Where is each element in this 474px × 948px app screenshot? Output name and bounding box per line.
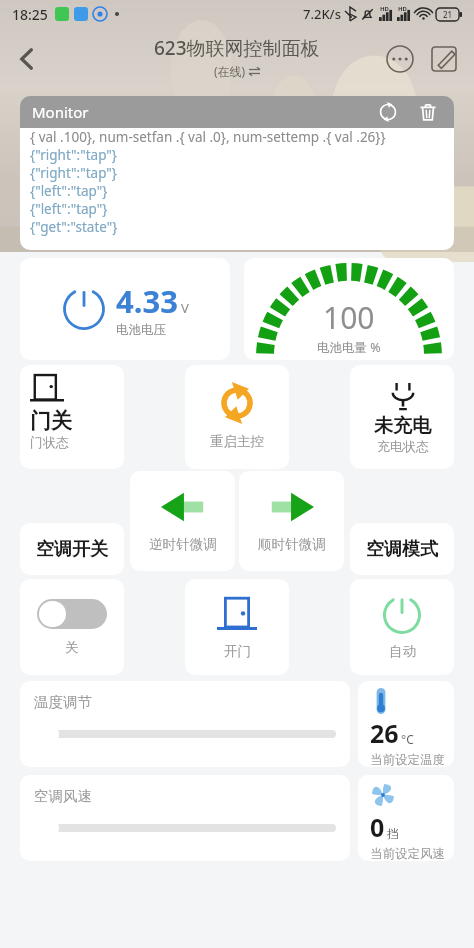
staticText: V	[181, 299, 189, 317]
button[interactable]: 逆时针微调	[130, 471, 235, 571]
button[interactable]: Back	[4, 36, 50, 82]
button[interactable]: 空调模式	[350, 523, 454, 575]
button[interactable]: 未充电	[350, 365, 454, 469]
staticText: 7.2K/s	[303, 5, 341, 23]
staticText: {"right":"tap"}	[30, 146, 117, 164]
staticText: Monitor	[32, 102, 89, 122]
button[interactable]: Clear log	[414, 98, 442, 126]
staticText: 未充电	[374, 414, 431, 438]
button[interactable]: 顺时针微调	[239, 471, 344, 571]
staticText: {"get":"state"}	[30, 218, 118, 236]
staticText: 重启主控	[210, 433, 264, 450]
button[interactable]: 26	[358, 681, 454, 767]
staticText: 开门	[224, 643, 251, 660]
staticText: HD	[398, 5, 407, 13]
staticText: 空调风速	[34, 787, 92, 805]
staticText: 0	[370, 810, 385, 844]
staticText: 100	[323, 297, 375, 338]
staticText: 自动	[389, 643, 416, 660]
staticText: {"left":"tap"}	[30, 200, 108, 218]
button[interactable]: 开门	[185, 579, 289, 675]
button[interactable]: Edit	[424, 39, 464, 79]
button[interactable]: 重启主控	[185, 365, 289, 469]
staticText: 18:25	[12, 5, 48, 24]
button[interactable]: Refresh	[374, 98, 402, 126]
staticText: 电池电压	[116, 322, 166, 338]
button[interactable]: 温度调节	[20, 681, 350, 767]
staticText: 623物联网控制面板	[154, 35, 320, 61]
staticText: °C	[401, 731, 414, 747]
staticText: 逆时针微调	[149, 536, 217, 553]
staticText: 关	[65, 639, 79, 656]
button[interactable]: 自动	[350, 579, 454, 675]
staticText: 空调模式	[366, 538, 438, 561]
button[interactable]: 0	[358, 775, 454, 861]
button[interactable]: 4.33	[20, 258, 230, 360]
button[interactable]: 门关	[20, 365, 124, 469]
staticText: 当前设定风速	[370, 846, 445, 861]
staticText: 充电状态	[377, 438, 429, 454]
staticText: 空调开关	[36, 538, 108, 561]
staticText: 电池电量 %	[317, 339, 381, 356]
staticText: (在线)	[214, 63, 246, 79]
staticText: {"right":"tap"}	[30, 164, 117, 182]
staticText: 顺时针微调	[258, 536, 326, 553]
staticText: 21	[443, 9, 453, 20]
staticText: 当前设定温度	[370, 752, 445, 767]
button[interactable]: 关	[20, 579, 124, 675]
staticText: HD	[380, 5, 389, 13]
button[interactable]: 空调开关	[20, 523, 124, 575]
staticText: 门状态	[30, 434, 69, 450]
staticText: 门关	[30, 408, 72, 434]
staticText: 温度调节	[34, 693, 92, 711]
staticText: 挡	[387, 826, 399, 841]
staticText: {"left":"tap"}	[30, 182, 108, 200]
staticText: 26	[370, 716, 399, 750]
staticText: { val .100}, num-setfan .{ val .0}, num-…	[30, 128, 386, 146]
button[interactable]: More options	[380, 39, 420, 79]
button[interactable]: 100	[244, 258, 454, 360]
button[interactable]: 空调风速	[20, 775, 350, 861]
staticText: 4.33	[116, 280, 178, 322]
